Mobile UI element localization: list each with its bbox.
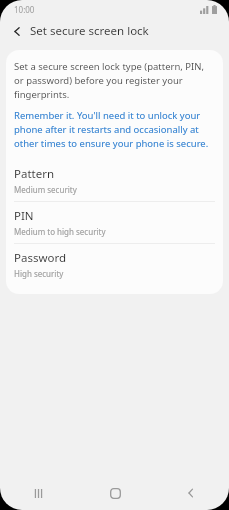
button[interactable]: Recents bbox=[0, 476, 77, 510]
button[interactable]: Home bbox=[77, 476, 153, 510]
button[interactable]: Back bbox=[6, 20, 28, 42]
staticText: Password bbox=[14, 250, 67, 266]
staticText: Set secure screen lock bbox=[30, 23, 149, 39]
staticText: Set a secure screen lock type (pattern, … bbox=[14, 60, 215, 101]
staticText: Medium to high security bbox=[14, 226, 106, 237]
button[interactable]: Pattern bbox=[6, 160, 223, 201]
staticText: PIN bbox=[14, 208, 34, 224]
staticText: 10:00 bbox=[14, 4, 35, 15]
staticText: High security bbox=[14, 268, 64, 279]
staticText: Medium security bbox=[14, 184, 77, 195]
staticText: Pattern bbox=[14, 166, 55, 182]
button[interactable]: PIN bbox=[6, 202, 223, 243]
staticText: Remember it. You'll need it to unlock yo… bbox=[14, 109, 215, 150]
button[interactable]: Password bbox=[6, 244, 223, 285]
button[interactable]: Back bbox=[153, 476, 229, 510]
